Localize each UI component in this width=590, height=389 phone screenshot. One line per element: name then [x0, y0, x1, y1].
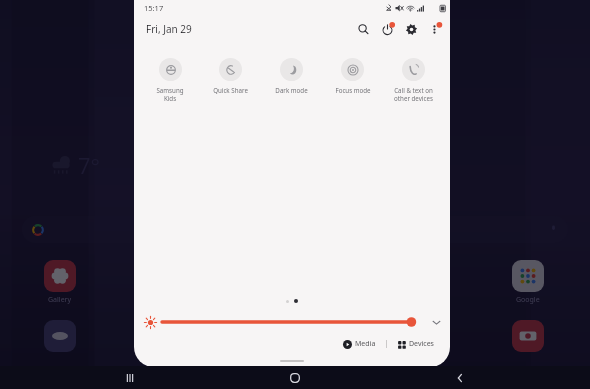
button[interactable]: Call & text on other devices: [383, 58, 444, 102]
staticText: 7°: [78, 150, 101, 180]
staticText: Gallery: [48, 295, 72, 305]
button[interactable]: Expand: [429, 315, 443, 329]
staticText: Fri, Jan 29: [146, 22, 192, 36]
staticText: Google: [516, 295, 540, 305]
staticText: Media: [355, 339, 376, 349]
staticText: 15:17: [144, 3, 164, 13]
button[interactable]: Samsung Kids: [140, 58, 200, 102]
button[interactable]: App: [44, 320, 76, 352]
staticText: Samsung Kids: [156, 86, 184, 102]
staticText: Call & text on other devices: [394, 86, 433, 102]
staticText: Dark mode: [275, 86, 308, 94]
button[interactable]: Google search: [22, 216, 568, 243]
button[interactable]: Google: [512, 260, 544, 292]
button[interactable]: Search: [355, 21, 371, 37]
button[interactable]: Quick Share: [200, 58, 261, 94]
staticText: Devices: [409, 339, 434, 349]
staticText: Quick Share: [213, 86, 248, 94]
button[interactable]: Focus mode: [322, 58, 383, 94]
button[interactable]: App: [512, 320, 544, 352]
button[interactable]: Power off: [379, 21, 395, 37]
button[interactable]: Dark mode: [261, 58, 322, 94]
button[interactable]: [161, 314, 426, 330]
button[interactable]: Home: [260, 366, 330, 389]
staticText: Focus mode: [335, 86, 371, 94]
button[interactable]: Recents: [95, 366, 165, 389]
button[interactable]: Media: [340, 337, 379, 351]
button[interactable]: Devices: [394, 337, 437, 351]
button[interactable]: More options: [427, 21, 443, 37]
button[interactable]: Gallery: [44, 260, 76, 292]
button[interactable]: Settings: [403, 21, 419, 37]
button[interactable]: Back: [425, 366, 495, 389]
